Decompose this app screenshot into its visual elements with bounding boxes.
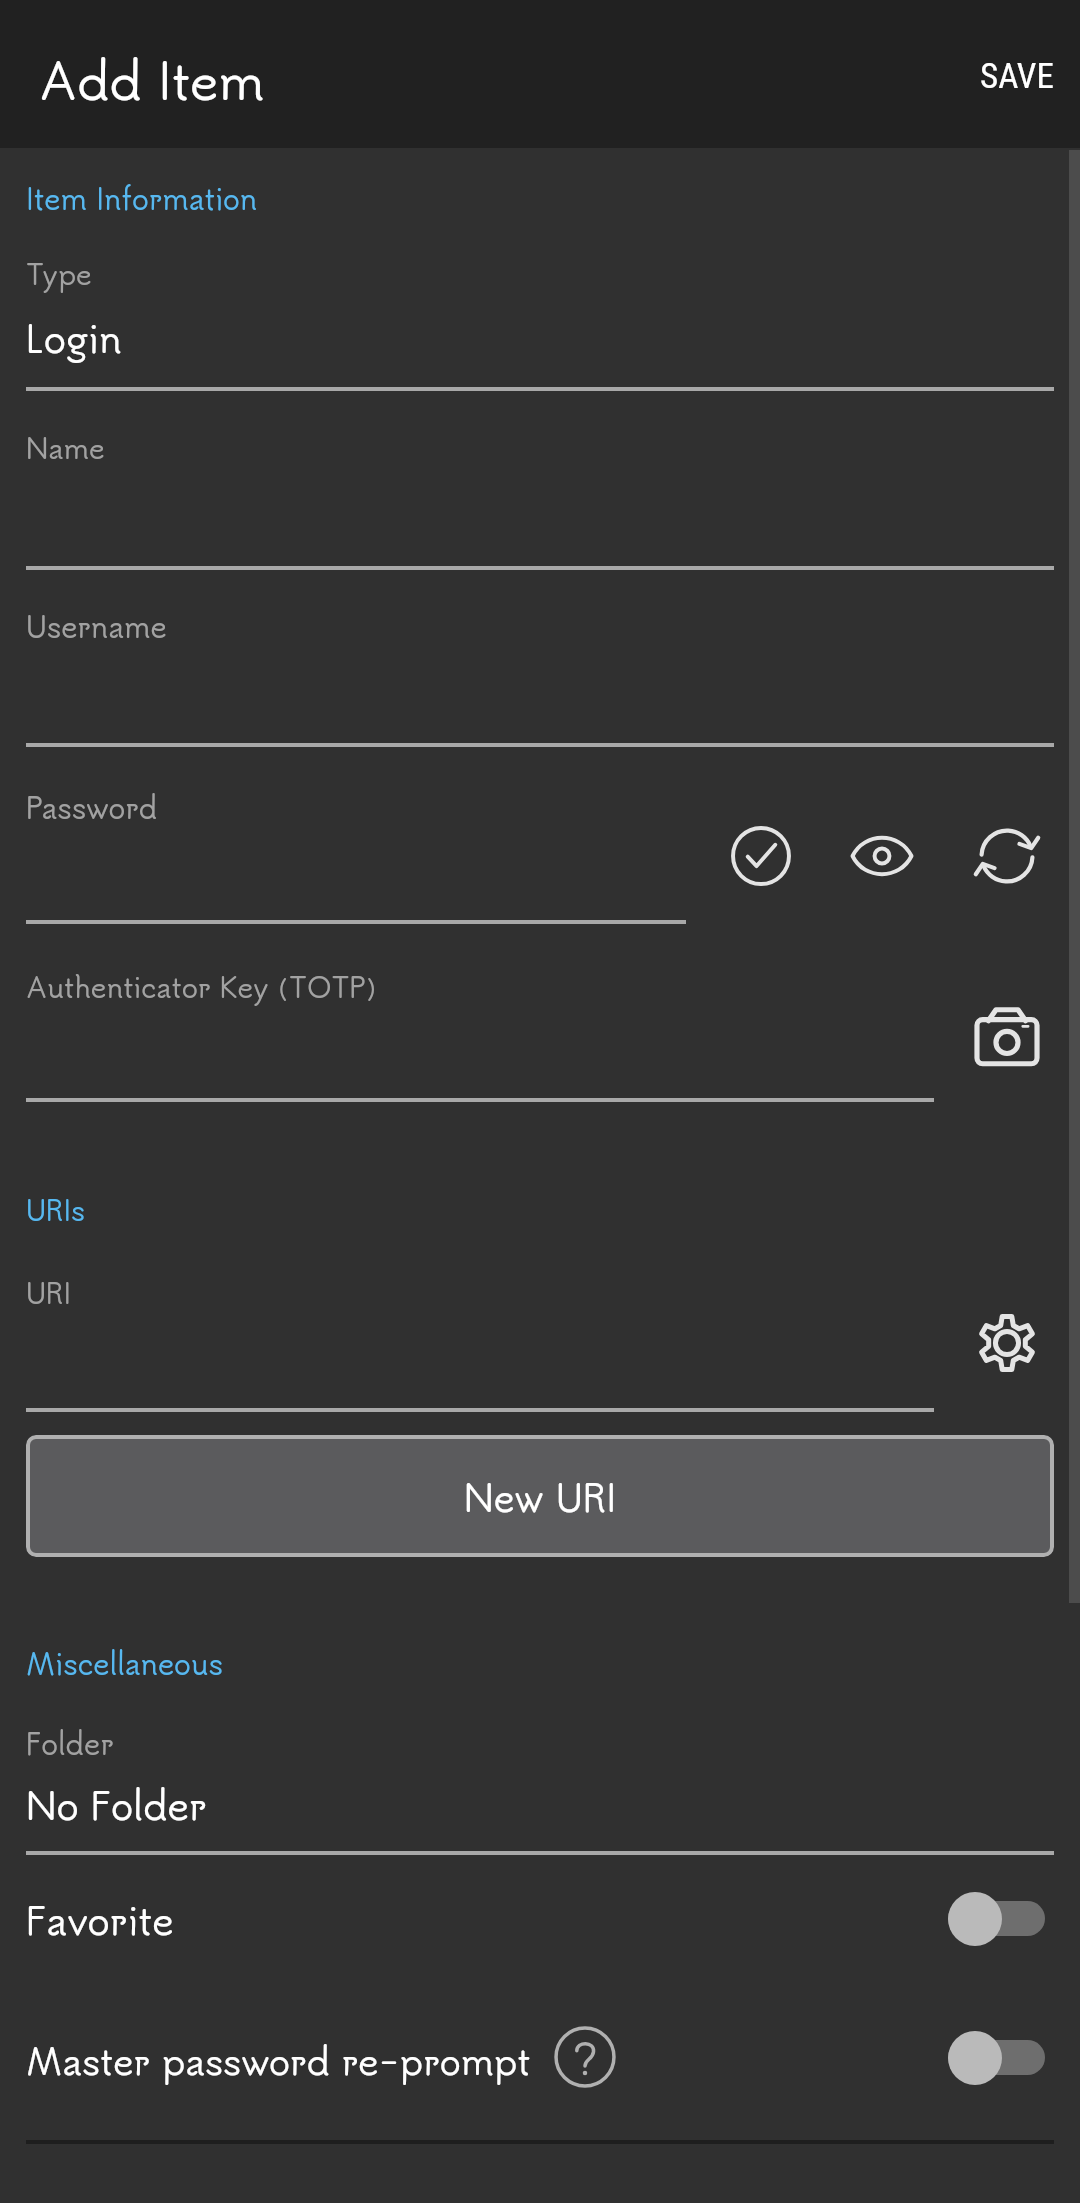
button[interactable]: Toggle password visibility — [844, 818, 920, 894]
button[interactable] — [26, 598, 1054, 748]
staticText: Item Information — [26, 178, 258, 219]
button[interactable]: Generate password — [969, 818, 1045, 894]
staticText: New URI — [464, 1470, 617, 1522]
staticText: Master password re-prompt — [26, 2034, 531, 2085]
staticText: No Folder — [26, 1777, 207, 1831]
staticText: Username — [26, 606, 167, 647]
button[interactable]: Toggle — [934, 1878, 1059, 1959]
button[interactable] — [26, 420, 1054, 571]
staticText: SAVE — [980, 56, 1054, 97]
staticText: Folder — [26, 1723, 114, 1764]
button[interactable]: New URI — [26, 1435, 1054, 1557]
button[interactable]: Toggle — [934, 2017, 1059, 2098]
button[interactable]: SAVE — [958, 28, 1080, 121]
button[interactable] — [26, 240, 1054, 392]
staticText: URIs — [26, 1190, 85, 1229]
button[interactable] — [0, 1872, 1080, 1990]
staticText: Login — [26, 310, 122, 364]
staticText: Password — [26, 787, 158, 828]
staticText: Miscellaneous — [26, 1643, 223, 1684]
button[interactable] — [26, 1712, 1054, 1856]
staticText: Name — [26, 428, 105, 467]
button[interactable]: URI match detection options — [969, 1305, 1045, 1381]
button[interactable] — [26, 1262, 934, 1413]
staticText: Add Item — [39, 43, 265, 114]
button[interactable] — [0, 2008, 1080, 2126]
staticText: Authenticator Key (TOTP) — [26, 967, 377, 1006]
button[interactable]: Check if password has been exposed — [723, 818, 799, 894]
staticText: Type — [26, 254, 92, 293]
button[interactable]: Scan QR code — [969, 998, 1045, 1074]
button[interactable] — [26, 956, 934, 1103]
button[interactable]: Help: master password re-prompt — [547, 2019, 623, 2095]
button[interactable] — [26, 776, 686, 925]
staticText: Favorite — [26, 1892, 174, 1946]
staticText: URI — [26, 1273, 72, 1312]
